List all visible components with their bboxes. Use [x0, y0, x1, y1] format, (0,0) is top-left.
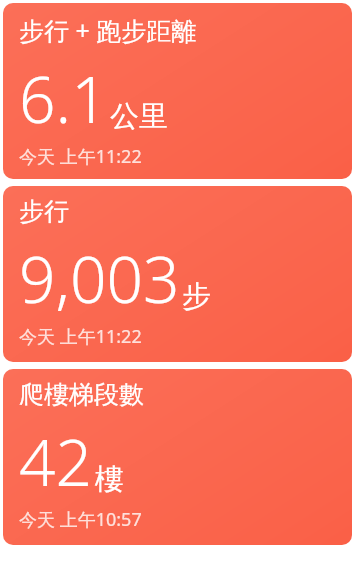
staticText: 步	[182, 278, 211, 315]
button[interactable]: 步行	[3, 186, 352, 362]
staticText: 樓	[95, 461, 124, 498]
button[interactable]: 步行 + 跑步距離	[3, 3, 352, 179]
staticText: 今天 上午11:22	[19, 324, 142, 349]
staticText: 6.1	[19, 55, 108, 142]
staticText: 42	[19, 418, 93, 505]
staticText: 今天 上午10:57	[19, 507, 142, 532]
button[interactable]: 爬樓梯段數	[3, 369, 352, 545]
staticText: 公里	[110, 98, 168, 135]
staticText: 今天 上午11:22	[19, 144, 142, 169]
staticText: 9,003	[19, 235, 180, 322]
staticText: 爬樓梯段數	[19, 379, 144, 410]
staticText: 步行	[19, 196, 69, 227]
staticText: 步行 + 跑步距離	[19, 13, 197, 47]
